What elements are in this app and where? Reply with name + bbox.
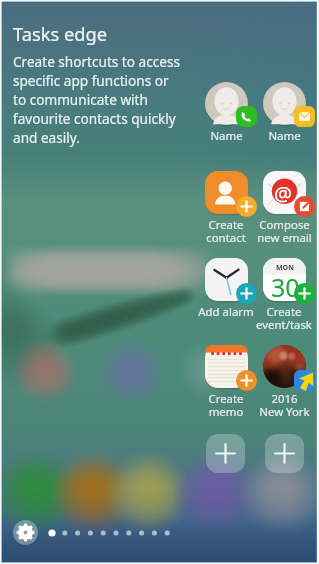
button[interactable]: Settings (13, 520, 38, 545)
staticText: Tasks edge (13, 21, 108, 46)
staticText: Name (268, 128, 301, 144)
button[interactable]: Add shortcut (206, 434, 245, 473)
staticText: Create shortcuts to access specific app … (13, 52, 180, 147)
staticText: 2016 New York (259, 391, 310, 419)
staticText: Create memo (208, 391, 244, 419)
button[interactable]: Create memo (197, 345, 255, 419)
button[interactable]: 2016 New York (255, 345, 313, 419)
staticText: Compose new email (257, 217, 312, 245)
button[interactable]: Add alarm (197, 258, 255, 332)
staticText: Create event/task (256, 304, 312, 332)
button[interactable]: Name (255, 82, 313, 156)
staticText: Create contact (206, 217, 246, 245)
staticText: @ (274, 180, 292, 207)
button[interactable]: Add shortcut (265, 434, 304, 473)
button[interactable]: Name (197, 82, 255, 156)
staticText: 30 (271, 270, 300, 304)
button[interactable]: MON (255, 258, 313, 332)
staticText: Add alarm (198, 304, 254, 320)
staticText: MON (276, 263, 294, 273)
button[interactable]: @ (255, 171, 313, 245)
staticText: Name (210, 128, 243, 144)
button[interactable]: Create contact (197, 171, 255, 245)
